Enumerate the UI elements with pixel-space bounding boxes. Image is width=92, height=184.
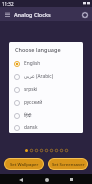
staticText: dansk bbox=[24, 124, 38, 131]
button[interactable]: हिंदी bbox=[9, 109, 83, 122]
button[interactable]: Recents bbox=[67, 175, 76, 184]
button[interactable]: English bbox=[9, 57, 83, 70]
button[interactable]: dansk bbox=[9, 122, 83, 133]
button[interactable]: Settings bbox=[80, 10, 89, 19]
button[interactable]: Home bbox=[42, 175, 51, 184]
button[interactable]: Set Screensaver bbox=[48, 158, 88, 170]
staticText: 11:32 bbox=[2, 1, 14, 7]
staticText: Set Screensaver bbox=[52, 161, 85, 167]
staticText: عربى (Arabic) bbox=[24, 73, 54, 80]
staticText: Analog Clocks bbox=[14, 11, 51, 18]
button[interactable]: русский bbox=[9, 96, 83, 109]
staticText: English bbox=[24, 60, 41, 67]
button[interactable]: Menu bbox=[3, 10, 11, 18]
staticText: srpski bbox=[24, 86, 38, 93]
button[interactable]: Back bbox=[16, 175, 25, 184]
staticText: Set Wallpaper bbox=[10, 161, 39, 167]
button[interactable]: srpski bbox=[9, 83, 83, 96]
staticText: हिंदी bbox=[24, 112, 32, 119]
button[interactable]: Set Wallpaper bbox=[4, 158, 44, 170]
staticText: Choose language bbox=[15, 46, 61, 53]
button[interactable]: عربى (Arabic) bbox=[9, 70, 83, 83]
staticText: русский bbox=[24, 99, 43, 106]
